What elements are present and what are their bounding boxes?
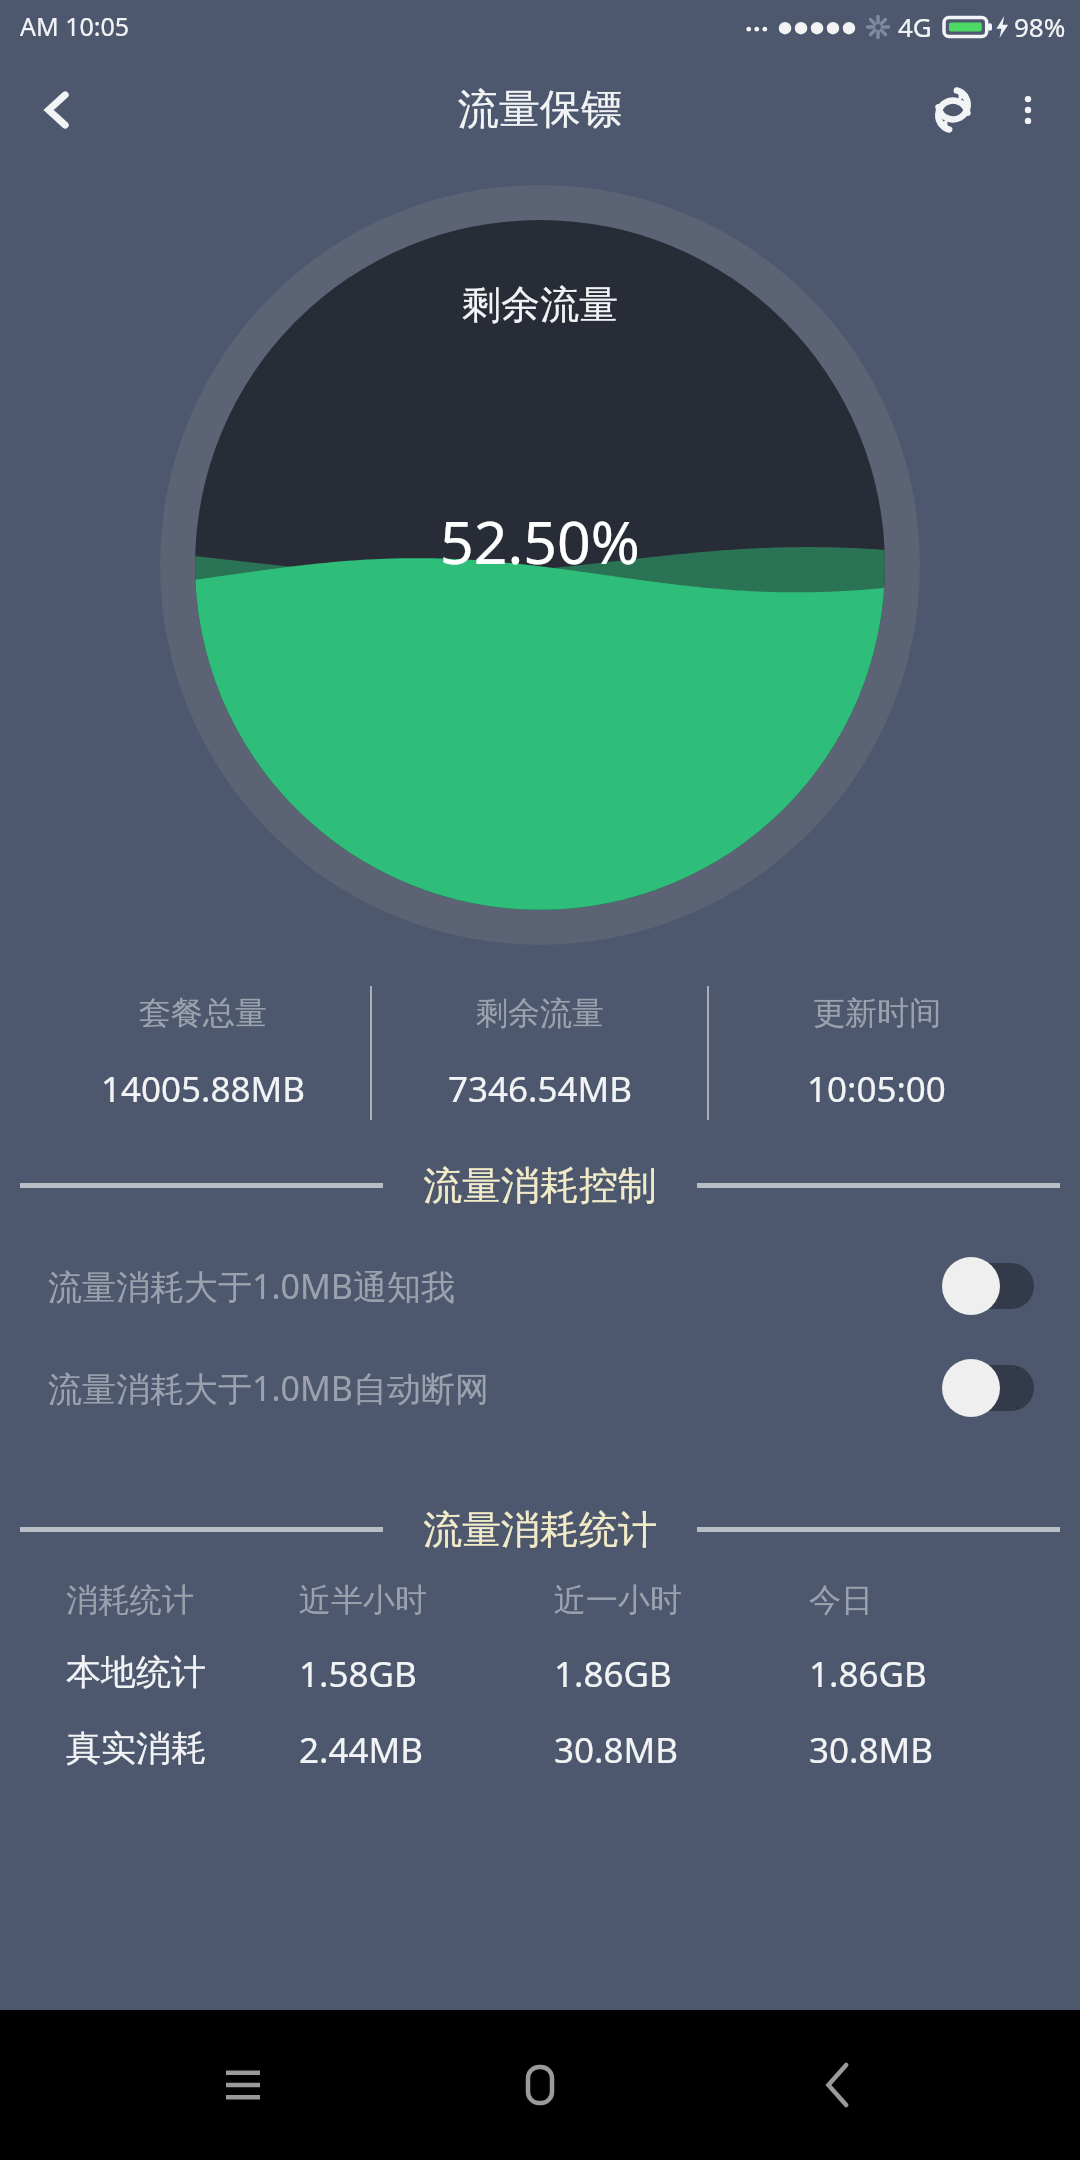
staticText: 流量消耗大于1.0MB通知我 [48,1263,942,1309]
staticText: 98% [1014,9,1066,44]
staticText: 10:05:00 [807,1065,946,1113]
button[interactable]: 套餐总量 [36,993,370,1113]
staticText: 1.86GB [809,1650,927,1698]
staticText: 真实消耗 [66,1726,206,1770]
staticText: 更新时间 [813,993,941,1033]
staticText: 剩余流量 [476,993,604,1033]
staticText: 30.8MB [554,1726,678,1774]
staticText: 14005.88MB [101,1065,306,1113]
button[interactable]: Back [783,2030,893,2140]
staticText: 1.58GB [299,1650,417,1698]
staticText: 52.50% [440,501,640,581]
button[interactable]: Refresh [914,71,992,149]
staticText: 本地统计 [66,1650,206,1694]
staticText: 剩余流量 [462,280,618,329]
staticText: 流量消耗大于1.0MB自动断网 [48,1365,942,1411]
staticText: 套餐总量 [139,993,267,1033]
staticText: 流量保镖 [458,84,622,136]
staticText: 7346.54MB [448,1065,632,1113]
button[interactable]: 剩余流量 [372,993,707,1113]
button[interactable]: Back [22,74,94,146]
button[interactable]: Home [485,2030,595,2140]
button[interactable]: More options [992,74,1064,146]
staticText: 30.8MB [809,1726,933,1774]
staticText: 近半小时 [299,1580,427,1620]
staticText: 今日 [809,1580,873,1620]
button[interactable]: 更新时间 [709,993,1044,1113]
button[interactable]: 流量消耗大于1.0MB自动断网 [0,1340,1080,1436]
staticText: 消耗统计 [66,1580,194,1620]
staticText: AM 10:05 [20,9,130,43]
staticText: 流量消耗统计 [423,1505,657,1554]
staticText: 近一小时 [554,1580,682,1620]
button[interactable]: Menu [188,2030,298,2140]
staticText: 4G [898,9,932,44]
staticText: 1.86GB [554,1650,672,1698]
button[interactable]: 流量消耗大于1.0MB通知我 [0,1238,1080,1334]
staticText: 2.44MB [299,1726,423,1774]
staticText: 流量消耗控制 [423,1161,657,1210]
